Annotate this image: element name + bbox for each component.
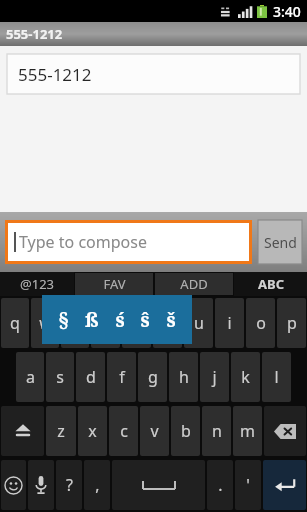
staticText: x bbox=[88, 420, 97, 442]
button[interactable]: d bbox=[76, 352, 105, 402]
staticText: g bbox=[148, 366, 158, 388]
staticText: ? bbox=[66, 474, 73, 496]
button[interactable]: m bbox=[233, 406, 262, 456]
staticText: z bbox=[57, 420, 65, 442]
staticText: v bbox=[150, 420, 159, 442]
staticText: ś bbox=[115, 307, 125, 333]
staticText: j bbox=[212, 366, 217, 388]
staticText: ß bbox=[85, 307, 99, 333]
button[interactable]: s bbox=[46, 352, 74, 402]
button[interactable]: g bbox=[138, 352, 167, 402]
button[interactable]: FAV bbox=[75, 273, 153, 295]
button[interactable]: c bbox=[109, 406, 138, 456]
staticText: n bbox=[212, 420, 222, 442]
staticText: q bbox=[10, 312, 20, 334]
staticText: y bbox=[163, 312, 172, 334]
staticText: ADD bbox=[180, 275, 208, 293]
staticText: p bbox=[287, 312, 297, 334]
button[interactable]: ? bbox=[56, 460, 82, 510]
staticText: š bbox=[166, 307, 176, 333]
button[interactable]: Enter bbox=[263, 460, 306, 510]
staticText: 555-1212 bbox=[18, 63, 92, 86]
button[interactable]: h bbox=[169, 352, 198, 402]
button[interactable]: 555-1212 bbox=[7, 54, 300, 94]
button[interactable]: Type to compose bbox=[8, 223, 249, 261]
button[interactable]: r bbox=[91, 298, 120, 348]
button[interactable]: ' bbox=[235, 460, 261, 510]
button[interactable]: § bbox=[42, 295, 192, 344]
button[interactable]: Backspace bbox=[264, 406, 306, 456]
staticText: @123 bbox=[20, 275, 54, 293]
staticText: ŝ bbox=[140, 307, 150, 333]
button[interactable]: Voice input bbox=[28, 460, 54, 510]
button[interactable]: l bbox=[262, 352, 291, 402]
staticText: ' bbox=[246, 474, 250, 496]
button[interactable]: v bbox=[140, 406, 169, 456]
staticText: 3:40 bbox=[273, 2, 301, 21]
button[interactable]: w bbox=[31, 298, 59, 348]
staticText: c bbox=[120, 420, 128, 442]
staticText: . bbox=[218, 474, 223, 496]
staticText: s bbox=[56, 366, 64, 388]
staticText: k bbox=[241, 366, 250, 388]
button[interactable]: n bbox=[202, 406, 231, 456]
button[interactable]: @123 bbox=[0, 272, 74, 296]
staticText: i bbox=[227, 312, 232, 334]
button[interactable]: p bbox=[277, 298, 306, 348]
staticText: FAV bbox=[103, 275, 126, 293]
staticText: Send bbox=[264, 233, 297, 252]
button[interactable]: Send bbox=[258, 220, 302, 264]
button[interactable]: b bbox=[171, 406, 200, 456]
button[interactable]: ABC bbox=[234, 272, 307, 296]
button[interactable]: t bbox=[122, 298, 151, 348]
staticText: o bbox=[256, 312, 266, 334]
button[interactable]: a bbox=[16, 352, 44, 402]
staticText: l bbox=[274, 366, 279, 388]
staticText: Type to compose bbox=[19, 231, 147, 253]
button[interactable]: Shift bbox=[1, 406, 44, 456]
button[interactable]: x bbox=[78, 406, 107, 456]
staticText: b bbox=[181, 420, 191, 442]
button[interactable]: . bbox=[207, 460, 233, 510]
staticText: f bbox=[119, 366, 125, 388]
staticText: w bbox=[39, 312, 52, 334]
staticText: m bbox=[240, 420, 255, 442]
staticText: , bbox=[95, 474, 100, 496]
staticText: d bbox=[86, 366, 96, 388]
staticText: h bbox=[179, 366, 189, 388]
button[interactable]: q bbox=[1, 298, 29, 348]
button[interactable]: Space bbox=[112, 460, 205, 510]
button[interactable]: , bbox=[84, 460, 110, 510]
button[interactable]: y bbox=[153, 298, 182, 348]
button[interactable]: ADD bbox=[155, 273, 233, 295]
button[interactable]: u bbox=[184, 298, 213, 348]
staticText: u bbox=[194, 312, 204, 334]
button[interactable]: f bbox=[107, 352, 136, 402]
button[interactable]: j bbox=[200, 352, 229, 402]
button[interactable]: o bbox=[246, 298, 275, 348]
staticText: a bbox=[26, 366, 35, 388]
staticText: 555-1212 bbox=[6, 25, 63, 43]
button[interactable]: z bbox=[46, 406, 76, 456]
button[interactable]: e bbox=[61, 298, 89, 348]
button[interactable]: Emoji bbox=[1, 460, 26, 510]
staticText: § bbox=[58, 307, 69, 333]
button[interactable]: k bbox=[231, 352, 260, 402]
button[interactable]: i bbox=[215, 298, 244, 348]
staticText: ABC bbox=[258, 275, 284, 293]
